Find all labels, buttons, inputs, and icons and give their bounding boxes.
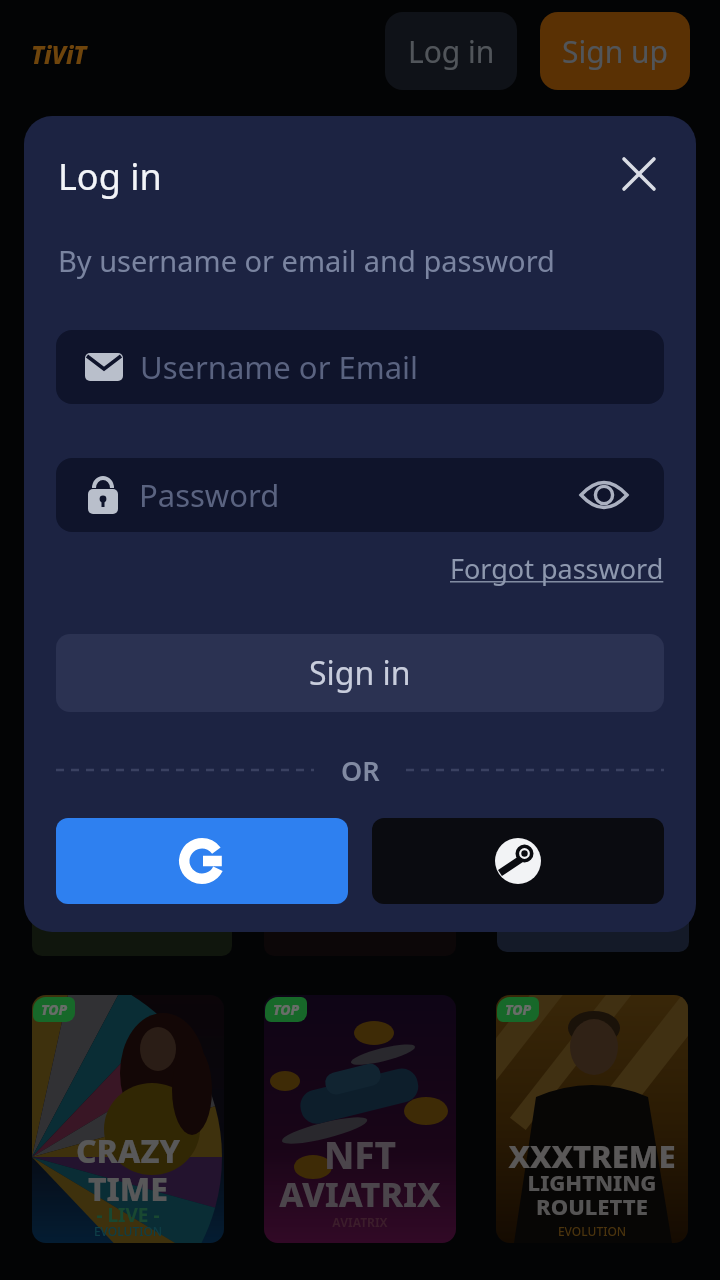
staticText: ROULETTE: [496, 1191, 688, 1221]
button[interactable]: Forgot password: [450, 550, 664, 587]
staticText: OR: [341, 752, 380, 789]
staticText: CRAZY: [32, 1129, 224, 1173]
staticText: EVOLUTION: [496, 1223, 688, 1239]
staticText: AVIATRIX: [264, 1171, 456, 1217]
staticText: Password: [139, 474, 280, 516]
staticText: LIGHTNING: [496, 1167, 688, 1197]
button[interactable]: Sign in: [56, 634, 664, 712]
button[interactable]: [622, 157, 656, 191]
staticText: TOP: [505, 1000, 532, 1019]
staticText: TiViT: [31, 38, 87, 71]
button[interactable]: Sign up: [540, 12, 690, 90]
staticText: NFT: [264, 1129, 456, 1179]
button[interactable]: [56, 818, 348, 904]
button[interactable]: NFT: [264, 995, 456, 1243]
button[interactable]: [580, 478, 628, 512]
button[interactable]: [372, 818, 664, 904]
staticText: AVIATRIX: [264, 1214, 456, 1230]
button[interactable]: Username or Email: [56, 330, 664, 404]
staticText: Log in: [408, 31, 495, 72]
staticText: TIME: [32, 1167, 224, 1211]
button[interactable]: Password: [56, 458, 664, 532]
button[interactable]: XXXTREME: [496, 995, 688, 1243]
staticText: Log in: [58, 152, 162, 201]
staticText: EVOLUTION: [32, 1223, 224, 1239]
staticText: XXXTREME: [496, 1135, 688, 1177]
staticText: - LIVE -: [32, 1202, 224, 1228]
staticText: Username or Email: [140, 346, 419, 388]
staticText: TOP: [273, 1000, 300, 1019]
button[interactable]: CRAZY: [32, 995, 224, 1243]
button[interactable]: Log in: [385, 12, 517, 90]
staticText: TOP: [41, 1000, 68, 1019]
staticText: Sign in: [309, 651, 411, 695]
staticText: By username or email and password: [58, 241, 555, 280]
staticText: Sign up: [562, 31, 668, 72]
